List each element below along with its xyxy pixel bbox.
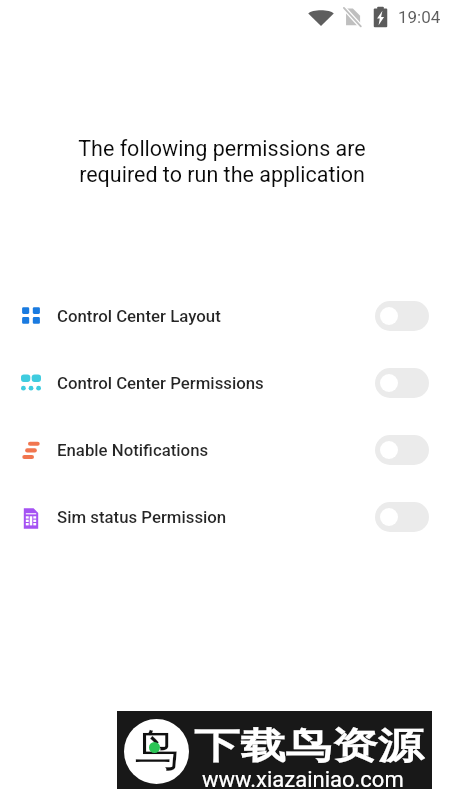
staticText: Control Center Permissions	[57, 373, 264, 393]
staticText: www.xiazainiao.com	[202, 767, 404, 793]
button[interactable]: Toggle permission	[375, 368, 429, 398]
button[interactable]: Sim status Permission	[0, 483, 450, 550]
button[interactable]: Toggle permission	[375, 435, 429, 465]
button[interactable]: Toggle permission	[375, 502, 429, 532]
staticText: 19:04	[398, 7, 441, 27]
staticText: 鸟	[135, 723, 179, 778]
staticText: Sim status Permission	[57, 507, 227, 527]
button[interactable]: Enable Notifications	[0, 416, 450, 483]
staticText: 下载鸟资源	[194, 723, 423, 768]
staticText: The following permissions are required t…	[78, 136, 366, 187]
button[interactable]: Toggle permission	[375, 301, 429, 331]
staticText: Control Center Layout	[57, 306, 221, 326]
button[interactable]: Control Center Permissions	[0, 349, 450, 416]
button[interactable]: Control Center Layout	[0, 282, 450, 349]
staticText: Enable Notifications	[57, 440, 209, 460]
